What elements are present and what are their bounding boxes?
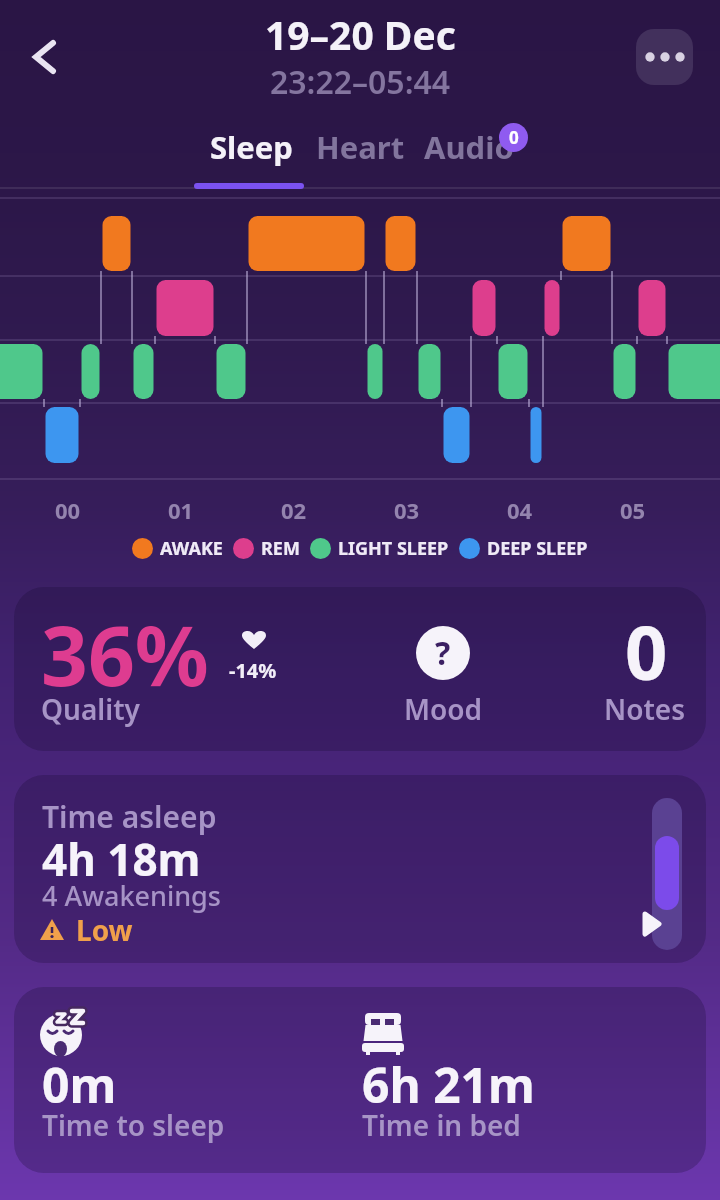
staticText: ? (435, 631, 451, 675)
staticText: 05 (620, 495, 646, 525)
staticText: 02 (281, 495, 307, 525)
staticText: Mood (404, 690, 483, 728)
staticText: Quality (41, 690, 140, 728)
button[interactable] (20, 34, 70, 80)
staticText: 01 (168, 495, 194, 525)
staticText: Sleep (210, 126, 293, 168)
staticText: LIGHT SLEEP (338, 536, 449, 560)
button[interactable] (318, 124, 404, 172)
staticText: 19–20 Dec (265, 8, 456, 61)
staticText: 00 (55, 495, 81, 525)
staticText: Heart (316, 126, 405, 168)
staticText: Audio (424, 126, 514, 168)
staticText: 04 (507, 495, 533, 525)
staticText: -14% (229, 657, 277, 684)
button[interactable]: 36% (14, 587, 706, 751)
staticText: DEEP SLEEP (487, 536, 588, 560)
staticText: 03 (394, 495, 420, 525)
staticText: Time to sleep (42, 1106, 225, 1144)
staticText: 0 (509, 126, 519, 149)
staticText: Time in bed (362, 1106, 521, 1144)
staticText: 36% (41, 598, 209, 710)
staticText: 6h 21m (362, 1052, 535, 1117)
staticText: 23:22–05:44 (270, 60, 451, 104)
staticText: 4 Awakenings (42, 877, 221, 914)
staticText: 4h 18m (42, 829, 201, 889)
staticText: Notes (604, 690, 686, 728)
staticText: REM (261, 536, 300, 560)
button[interactable] (426, 124, 512, 172)
button[interactable] (206, 124, 298, 172)
button[interactable]: ? (416, 626, 470, 680)
staticText: Time asleep (42, 796, 217, 837)
staticText: 0m (42, 1052, 117, 1117)
staticText: AWAKE (160, 536, 223, 560)
button[interactable] (636, 29, 693, 85)
button[interactable]: 0m (14, 987, 706, 1173)
button[interactable]: Time asleep (14, 775, 706, 963)
staticText: 0 (625, 601, 668, 702)
staticText: Low (76, 911, 133, 949)
